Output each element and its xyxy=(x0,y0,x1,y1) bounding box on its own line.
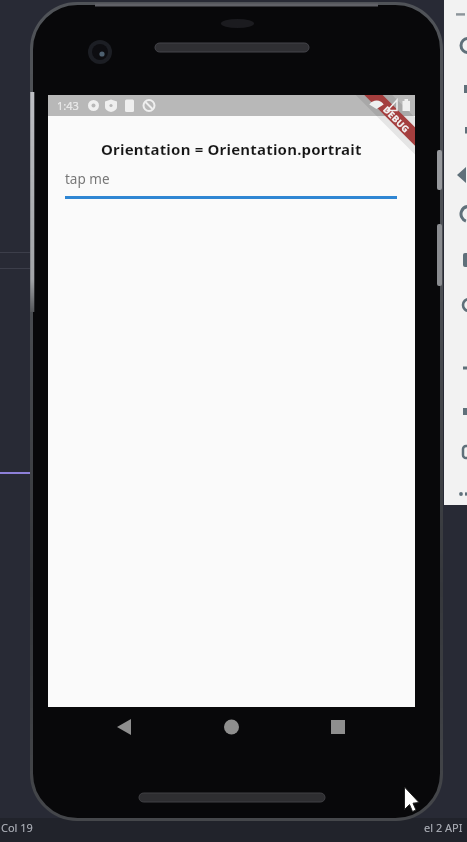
staticText: 1:43 xyxy=(57,98,79,113)
staticText: Orientation = Orientation.portrait xyxy=(101,139,362,159)
staticText: DEBUG xyxy=(381,103,413,135)
staticText: Col 19 xyxy=(1,820,33,835)
staticText: tap me xyxy=(65,170,110,188)
staticText: el 2 API xyxy=(424,820,463,835)
